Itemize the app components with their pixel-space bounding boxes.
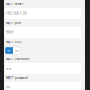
- staticText: Test: [6, 67, 11, 70]
- staticText: MQTT username: [6, 57, 30, 61]
- button[interactable]: Test: [5, 63, 81, 74]
- staticText: 192.168.1.33: [6, 12, 27, 15]
- button[interactable]: 9001: [5, 27, 81, 38]
- staticText: Yes: [15, 49, 19, 52]
- staticText: MQTT password: [6, 76, 28, 80]
- staticText: ••••: [6, 86, 10, 89]
- staticText: MQTT server: [6, 2, 23, 6]
- staticText: MQTT port: [6, 21, 21, 25]
- button[interactable]: No: [5, 47, 13, 54]
- staticText: 9001: [6, 31, 14, 34]
- button[interactable]: 192.168.1.33: [5, 8, 81, 19]
- staticText: MQTT SSL ?: [6, 40, 22, 44]
- button[interactable]: ••••: [5, 82, 81, 90]
- staticText: No: [7, 49, 11, 52]
- button[interactable]: Yes: [13, 47, 21, 54]
